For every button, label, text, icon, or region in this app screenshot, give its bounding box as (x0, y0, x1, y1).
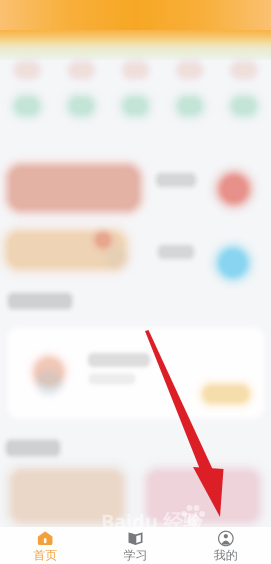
button[interactable]: 我的 (181, 527, 271, 564)
staticText: 我的 (214, 548, 238, 563)
button[interactable]: 学习 (90, 527, 181, 564)
button[interactable]: 首页 (0, 527, 90, 564)
staticText: 学习 (123, 548, 147, 563)
staticText: Baidu 经验 (101, 508, 203, 534)
staticText: 首页 (33, 548, 57, 563)
